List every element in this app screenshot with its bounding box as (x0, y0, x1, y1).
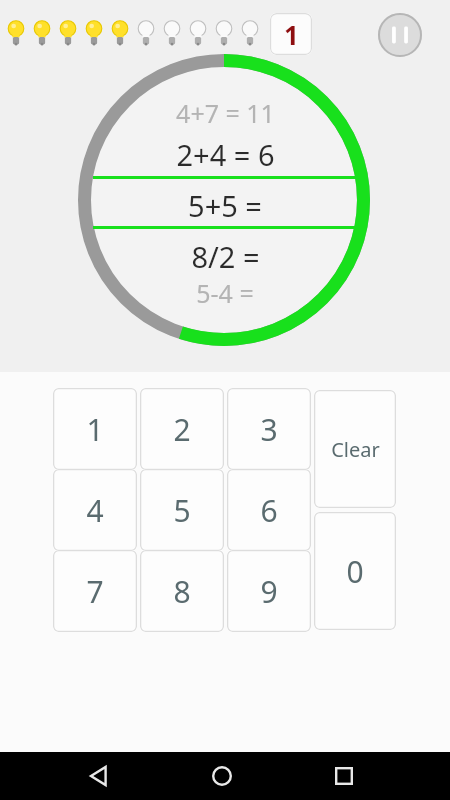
button[interactable]: 4 (53, 469, 137, 551)
button[interactable]: Back (78, 754, 122, 798)
button[interactable]: 2 (140, 388, 224, 470)
staticText: 5+5 = (188, 186, 262, 219)
button[interactable]: 3 (227, 388, 311, 470)
button[interactable]: 9 (227, 550, 311, 632)
staticText: 8 (173, 571, 191, 612)
staticText: 1 (284, 17, 299, 52)
staticText: Clear (331, 436, 380, 463)
button[interactable]: 5 (140, 469, 224, 551)
staticText: 4 (86, 490, 104, 531)
button[interactable]: 0 (314, 512, 396, 630)
button[interactable]: 1 (53, 388, 137, 470)
staticText: 1 (86, 409, 104, 450)
staticText: 6 (260, 490, 278, 531)
button[interactable]: Recents (322, 754, 366, 798)
button[interactable]: Pause (378, 13, 422, 57)
staticText: 9 (260, 571, 278, 612)
button[interactable]: Home (200, 754, 244, 798)
staticText: 4+7 = 11 (176, 96, 275, 129)
button[interactable]: Clear (314, 390, 396, 508)
button[interactable]: 1 (270, 13, 312, 55)
staticText: 5-4 = (196, 276, 254, 309)
button[interactable]: 7 (53, 550, 137, 632)
staticText: 7 (86, 571, 104, 612)
staticText: 5 (173, 490, 191, 531)
staticText: 2 (173, 409, 191, 450)
button[interactable]: 6 (227, 469, 311, 551)
staticText: 0 (346, 551, 364, 592)
staticText: 8/2 = (191, 237, 260, 270)
staticText: 2+4 = 6 (176, 135, 275, 168)
button[interactable]: 8 (140, 550, 224, 632)
staticText: 3 (260, 409, 278, 450)
